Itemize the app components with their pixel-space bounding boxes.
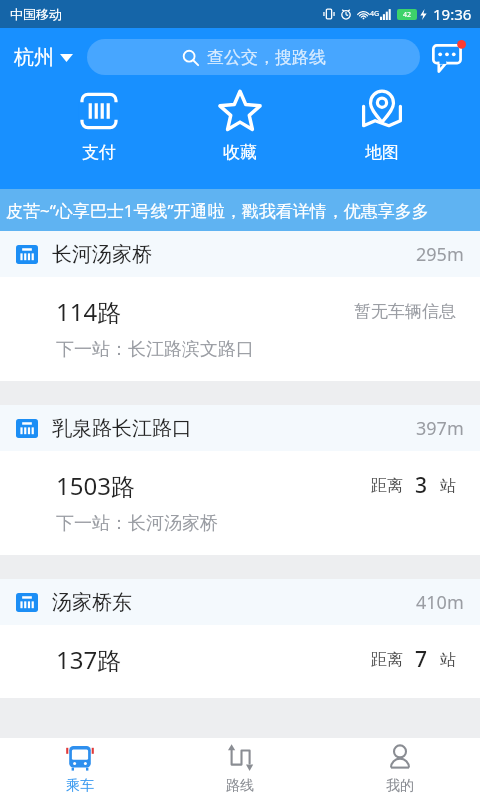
staticText: 距离 bbox=[371, 476, 403, 496]
button[interactable]: 皮苦~“心享巴士1号线”开通啦，戳我看详情，优惠享多多 bbox=[0, 189, 480, 231]
staticText: 1503路 bbox=[56, 469, 135, 502]
staticText: 收藏 bbox=[223, 142, 257, 163]
staticText: 397m bbox=[416, 416, 464, 441]
staticText: 汤家桥东 bbox=[52, 590, 132, 615]
staticText: 中国移动 bbox=[10, 6, 62, 22]
button[interactable]: 杭州 bbox=[8, 39, 79, 76]
button[interactable]: Messages bbox=[426, 34, 472, 80]
staticText: 295m bbox=[416, 242, 464, 267]
staticText: 3 bbox=[415, 471, 428, 500]
button[interactable]: 长河汤家桥 bbox=[0, 231, 480, 381]
staticText: 19:36 bbox=[433, 4, 472, 24]
staticText: 7 bbox=[415, 645, 428, 674]
staticText: 410m bbox=[416, 590, 464, 615]
staticText: 114路 bbox=[56, 295, 122, 328]
staticText: 路线 bbox=[226, 777, 254, 795]
button[interactable]: 地图 bbox=[339, 86, 425, 165]
staticText: 杭州 bbox=[14, 45, 54, 70]
button[interactable]: 汤家桥东 bbox=[0, 579, 480, 698]
button[interactable]: 路线 bbox=[160, 738, 320, 800]
staticText: 下一站：长江路滨文路口 bbox=[56, 338, 254, 361]
staticText: 下一站：长河汤家桥 bbox=[56, 512, 218, 535]
staticText: 查公交，搜路线 bbox=[207, 47, 326, 68]
staticText: 137路 bbox=[56, 643, 122, 676]
staticText: 乘车 bbox=[66, 777, 94, 795]
button[interactable]: 查公交，搜路线 bbox=[87, 39, 420, 75]
staticText: 暂无车辆信息 bbox=[354, 301, 456, 322]
staticText: 乳泉路长江路口 bbox=[52, 416, 192, 441]
staticText: 支付 bbox=[82, 142, 116, 163]
staticText: 距离 bbox=[371, 650, 403, 670]
staticText: 皮苦~“心享巴士1号线”开通啦，戳我看详情，优惠享多多 bbox=[6, 199, 429, 222]
button[interactable]: 支付 bbox=[56, 86, 142, 165]
button[interactable]: 乘车 bbox=[0, 738, 160, 800]
staticText: 4G bbox=[370, 9, 380, 19]
staticText: 站 bbox=[440, 476, 456, 496]
button[interactable]: 收藏 bbox=[197, 86, 283, 165]
button[interactable]: 我的 bbox=[320, 738, 480, 800]
staticText: 42 bbox=[403, 10, 412, 20]
button[interactable]: 乳泉路长江路口 bbox=[0, 405, 480, 555]
staticText: 长河汤家桥 bbox=[52, 242, 152, 267]
staticText: 我的 bbox=[386, 777, 414, 795]
staticText: 站 bbox=[440, 650, 456, 670]
staticText: 地图 bbox=[365, 142, 399, 163]
